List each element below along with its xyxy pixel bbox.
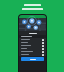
- button[interactable]: Map: [19, 18, 46, 31]
- button[interactable]: [21, 57, 44, 61]
- button[interactable]: [19, 44, 46, 47]
- button[interactable]: [19, 53, 46, 56]
- button[interactable]: [19, 41, 46, 44]
- button[interactable]: [19, 47, 46, 50]
- button[interactable]: [19, 50, 46, 53]
- button[interactable]: [19, 38, 46, 41]
